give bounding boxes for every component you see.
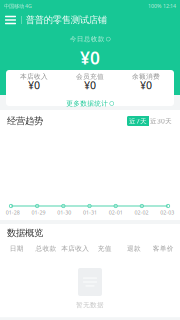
staticText: 02-03 [160, 209, 174, 216]
staticText: ¥0 [84, 78, 96, 92]
staticText: 余额消费 [132, 72, 160, 81]
staticText: 02-02 [134, 209, 148, 216]
staticText: 01-29 [32, 209, 46, 216]
staticText: 数据概览 [7, 227, 43, 239]
staticText: 近7天 [129, 117, 147, 125]
staticText: ¥0 [80, 46, 100, 69]
staticText: 近30天 [150, 117, 172, 125]
staticText: 暂无数据 [76, 301, 104, 309]
staticText: 02-01 [109, 209, 123, 216]
staticText: 本店收入 [61, 244, 89, 253]
staticText: 本店收入 [20, 72, 48, 81]
staticText: 退款 [127, 244, 141, 253]
staticText: 普普的零售测试店铺 [26, 14, 107, 26]
staticText: 01-30 [57, 209, 71, 216]
button[interactable]: 近7天 [127, 116, 149, 126]
staticText: 经营趋势 [7, 115, 43, 127]
button[interactable]: 更多数据统计 [6, 98, 174, 109]
staticText: 今日总收款 [70, 35, 105, 43]
staticText: 01-28 [6, 209, 20, 216]
staticText: ¥0 [140, 78, 152, 92]
staticText: 100% 12:14 [148, 2, 176, 10]
staticText: 01-31 [83, 209, 97, 216]
staticText: 客单价 [153, 244, 174, 253]
staticText: 日期 [10, 244, 24, 253]
staticText: ¥0 [28, 78, 40, 92]
button[interactable]: Menu [0, 12, 21, 28]
staticText: 总收款 [35, 244, 56, 253]
button[interactable]: 近30天 [149, 116, 173, 126]
staticText: 中国移动 4G [4, 2, 32, 10]
staticText: 更多数据统计 [66, 99, 108, 108]
staticText: 充值 [98, 244, 112, 253]
staticText: 会员充值 [76, 72, 104, 81]
